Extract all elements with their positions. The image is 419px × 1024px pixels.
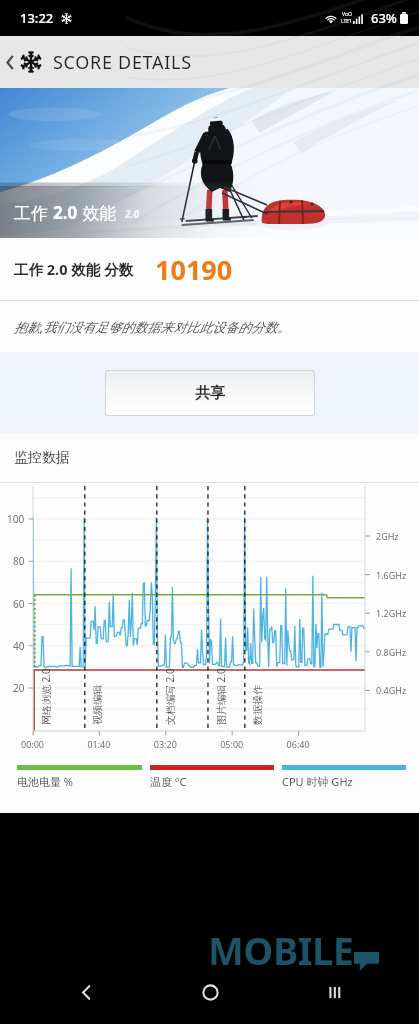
button[interactable]: Back — [58, 964, 114, 1020]
staticText: 温度 °C — [150, 774, 187, 789]
staticText: 共享 — [195, 384, 225, 403]
staticText: 63% — [371, 9, 397, 27]
staticText: SCORE DETAILS — [53, 50, 192, 75]
staticText: CPU 时钟 GHz — [282, 774, 353, 789]
staticText: 电池电量 % — [17, 774, 74, 789]
staticText: 2.0 — [125, 207, 139, 221]
staticText: 抱歉,我们没有足够的数据来对比此设备的分数。 — [14, 318, 291, 336]
staticText: LTE1 — [341, 18, 352, 25]
staticText: 工作 — [14, 201, 53, 224]
staticText: 13:22 — [20, 9, 54, 27]
staticText: 效能 — [78, 201, 117, 224]
button[interactable]: Home — [182, 964, 238, 1020]
button[interactable]: 共享 — [106, 371, 314, 415]
staticText: 监控数据 — [14, 449, 70, 467]
staticText: VoO — [342, 11, 352, 18]
button[interactable]: Back — [0, 42, 20, 82]
staticText: MOBILE — [208, 924, 354, 976]
button[interactable]: Recents — [306, 964, 362, 1020]
staticText: 2.0 — [53, 201, 78, 224]
staticText: 工作 2.0 效能 分数 — [14, 259, 133, 279]
staticText: 10190 — [155, 251, 233, 288]
